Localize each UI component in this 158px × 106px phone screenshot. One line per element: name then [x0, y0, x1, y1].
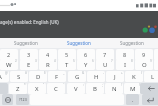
staticText: B: [93, 85, 97, 93]
staticText: $: [44, 71, 46, 75]
button[interactable]: Y: [77, 59, 95, 70]
button[interactable]: Backspace: [140, 83, 158, 94]
staticText: V: [74, 85, 78, 93]
button[interactable]: A: [0, 71, 9, 82]
staticText: O: [142, 61, 147, 69]
staticText: D: [36, 73, 41, 81]
staticText: 7: [111, 59, 113, 63]
staticText: 2: [15, 59, 17, 63]
staticText: S: [17, 73, 21, 81]
staticText: 5: [65, 51, 69, 58]
staticText: 9: [150, 59, 152, 63]
staticText: #: [25, 71, 27, 75]
staticText: 4: [46, 51, 50, 58]
staticText: G: [75, 73, 80, 81]
button[interactable]: Z: [9, 83, 27, 94]
staticText: Z: [16, 85, 20, 93]
staticText: Suggestion: [67, 40, 91, 46]
button[interactable]: N: [105, 83, 123, 94]
staticText: Y: [84, 61, 88, 69]
staticText: R: [46, 61, 50, 69]
button[interactable]: O: [135, 59, 153, 70]
staticText: 5: [73, 59, 75, 63]
staticText: @: [5, 71, 8, 75]
staticText: J: [114, 73, 116, 81]
button[interactable]: Symbols: [16, 94, 29, 105]
staticText: 8: [131, 59, 133, 63]
button[interactable]: W: [0, 59, 18, 70]
staticText: 4: [54, 59, 56, 63]
button[interactable]: V: [67, 83, 85, 94]
staticText: :: [83, 83, 84, 87]
button[interactable]: F: [48, 71, 66, 82]
button[interactable]: B: [86, 83, 104, 94]
button[interactable]: 5: [58, 49, 76, 60]
button[interactable]: S: [10, 71, 28, 82]
button[interactable]: U: [96, 59, 114, 70]
staticText: (: [141, 71, 142, 75]
button[interactable]: D: [29, 71, 47, 82]
staticText: W: [6, 61, 12, 69]
staticText: C: [54, 85, 58, 93]
button[interactable]: E: [20, 59, 38, 70]
staticText: ': [63, 83, 64, 87]
staticText: ": [43, 83, 45, 87]
button[interactable]: .: [126, 94, 139, 105]
button[interactable]: Suggestion: [52, 38, 105, 48]
staticText: H: [94, 73, 99, 81]
button[interactable]: X: [28, 83, 46, 94]
button[interactable]: Switch language: [2, 94, 13, 105]
staticText: F: [55, 73, 59, 81]
staticText: A: [0, 73, 2, 81]
staticText: 3: [35, 59, 37, 63]
staticText: ;: [102, 83, 103, 87]
button[interactable]: 2: [0, 49, 18, 60]
staticText: 9: [142, 51, 146, 58]
staticText: 6: [84, 51, 88, 58]
button[interactable]: Enter: [142, 94, 158, 105]
staticText: age(s) enabled: English (UK): [0, 19, 59, 25]
button[interactable]: Suggestion: [105, 38, 158, 48]
staticText: U: [103, 61, 108, 69]
button[interactable]: K: [125, 71, 143, 82]
staticText: 7: [103, 51, 107, 58]
button[interactable]: M: [124, 83, 142, 94]
staticText: *: [24, 83, 26, 87]
staticText: 6: [92, 59, 94, 63]
staticText: K: [132, 73, 136, 81]
button[interactable]: J: [106, 71, 124, 82]
button[interactable]: 4: [39, 49, 57, 60]
staticText: Suggestion: [120, 40, 144, 46]
staticText: Suggestion: [14, 40, 38, 46]
staticText: !: [121, 83, 122, 87]
staticText: M: [130, 85, 136, 93]
button[interactable]: 8: [116, 49, 134, 60]
button[interactable]: G: [68, 71, 86, 82]
staticText: .: [132, 96, 134, 103]
staticText: &: [82, 71, 85, 75]
button[interactable]: 9: [135, 49, 153, 60]
button[interactable]: T: [58, 59, 76, 70]
button[interactable]: Suggestion: [0, 38, 52, 48]
staticText: +: [121, 71, 123, 75]
staticText: T: [65, 61, 69, 69]
staticText: X: [35, 85, 39, 93]
button[interactable]: I: [116, 59, 134, 70]
button[interactable]: R: [39, 59, 57, 70]
button[interactable]: 6: [77, 49, 95, 60]
button[interactable]: L: [144, 71, 158, 82]
button[interactable]: 3: [20, 49, 38, 60]
staticText: N: [112, 85, 117, 93]
staticText: L: [151, 73, 155, 81]
button[interactable]: H: [87, 71, 105, 82]
staticText: ?: [139, 83, 141, 87]
button[interactable]: C: [47, 83, 65, 94]
staticText: I: [124, 61, 127, 69]
button[interactable]: 7: [96, 49, 114, 60]
staticText: _: [63, 71, 65, 75]
staticText: -: [103, 71, 104, 75]
